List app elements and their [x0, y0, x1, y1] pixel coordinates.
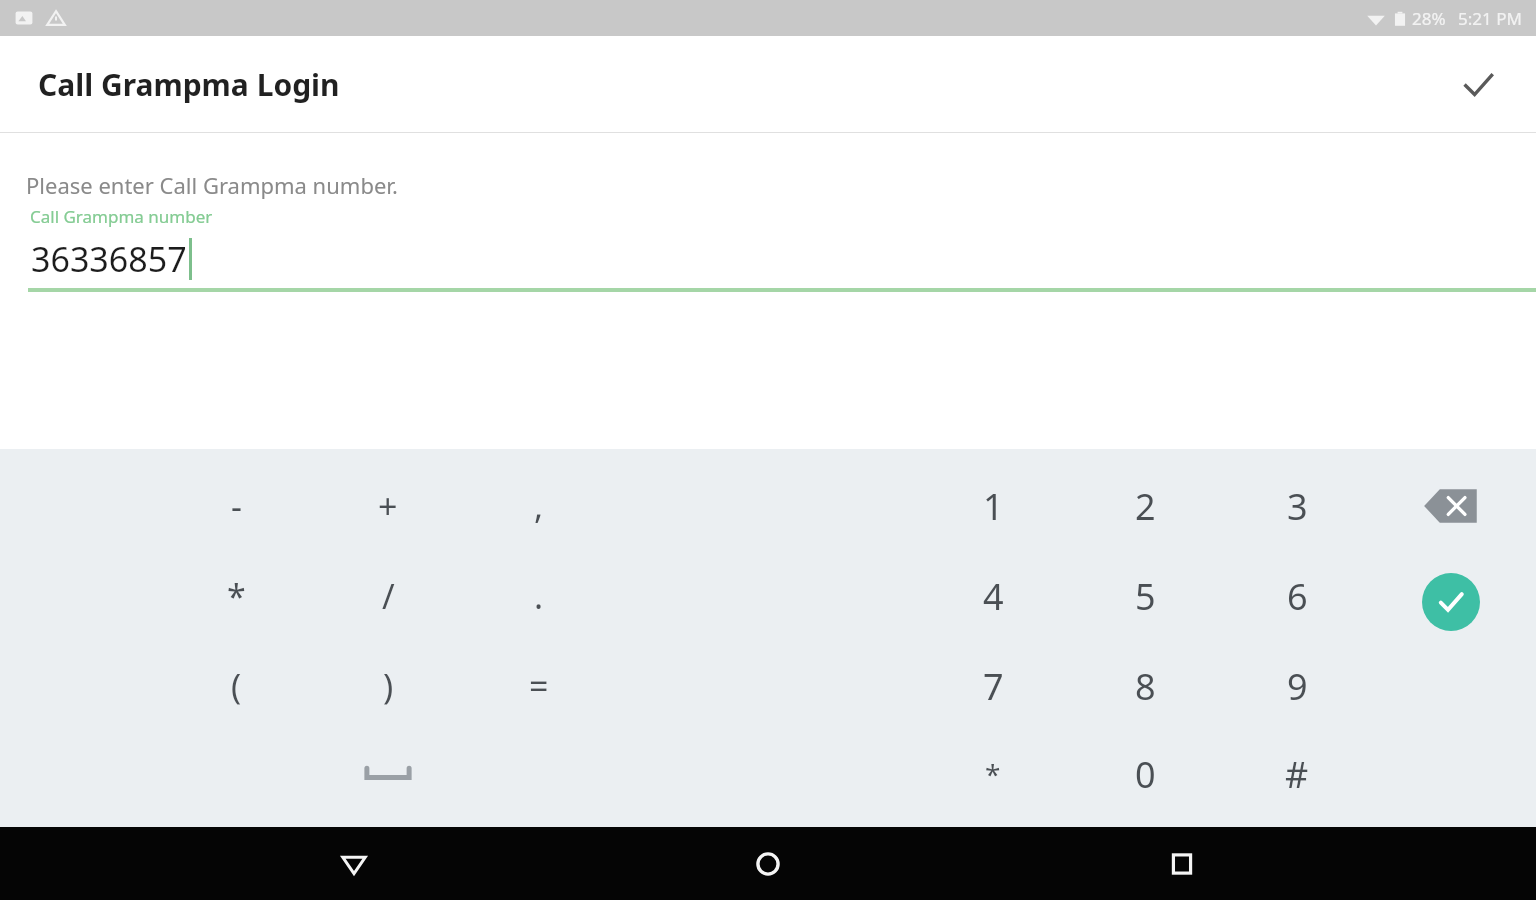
button[interactable]: 1: [935, 464, 1051, 548]
button[interactable]: *: [935, 732, 1051, 816]
staticText: 3: [1287, 482, 1308, 531]
staticText: ,: [534, 483, 544, 529]
button[interactable]: 3: [1239, 464, 1355, 548]
staticText: 5:21 PM: [1458, 7, 1522, 30]
staticText: Call Grampma Login: [38, 64, 340, 105]
staticText: #: [1285, 750, 1309, 799]
button[interactable]: Home: [708, 827, 828, 900]
button[interactable]: +: [330, 464, 446, 548]
staticText: /: [382, 573, 395, 619]
staticText: .: [534, 573, 544, 619]
button[interactable]: Enter: [1391, 554, 1511, 650]
button[interactable]: 6: [1239, 554, 1355, 638]
button[interactable]: (: [178, 644, 294, 728]
staticText: (: [231, 663, 242, 709]
staticText: *: [985, 755, 1001, 793]
button[interactable]: Space: [330, 734, 446, 814]
button[interactable]: .: [481, 554, 597, 638]
button[interactable]: ,: [481, 464, 597, 548]
staticText: 0: [1135, 750, 1156, 799]
staticText: 9: [1287, 662, 1308, 711]
button[interactable]: 2: [1087, 464, 1203, 548]
staticText: 6: [1287, 572, 1308, 621]
button[interactable]: 4: [935, 554, 1051, 638]
staticText: 4: [983, 572, 1004, 621]
button[interactable]: 0: [1087, 732, 1203, 816]
staticText: -: [231, 483, 242, 529]
button[interactable]: #: [1239, 732, 1355, 816]
button[interactable]: -: [178, 464, 294, 548]
button[interactable]: 5: [1087, 554, 1203, 638]
staticText: =: [529, 663, 549, 709]
staticText: 5: [1135, 572, 1156, 621]
button[interactable]: Back: [294, 827, 414, 900]
button[interactable]: 7: [935, 644, 1051, 728]
staticText: 28%: [1412, 7, 1446, 30]
button[interactable]: *: [178, 554, 294, 638]
staticText: 1: [983, 482, 1004, 531]
button[interactable]: Backspace: [1391, 464, 1511, 548]
staticText: 8: [1135, 662, 1156, 711]
staticText: Call Grampma number: [30, 205, 213, 228]
staticText: 7: [983, 662, 1004, 711]
staticText: +: [378, 483, 398, 529]
button[interactable]: 36336857: [0, 236, 1536, 282]
button[interactable]: Confirm: [1446, 53, 1510, 117]
staticText: 36336857: [31, 236, 187, 282]
button[interactable]: 8: [1087, 644, 1203, 728]
button[interactable]: Recents: [1122, 827, 1242, 900]
staticText: Please enter Call Grampma number.: [26, 170, 398, 200]
button[interactable]: ): [330, 644, 446, 728]
staticText: ): [383, 663, 394, 709]
button[interactable]: 9: [1239, 644, 1355, 728]
staticText: 2: [1135, 482, 1156, 531]
staticText: *: [227, 573, 246, 619]
button[interactable]: /: [330, 554, 446, 638]
button[interactable]: =: [481, 644, 597, 728]
